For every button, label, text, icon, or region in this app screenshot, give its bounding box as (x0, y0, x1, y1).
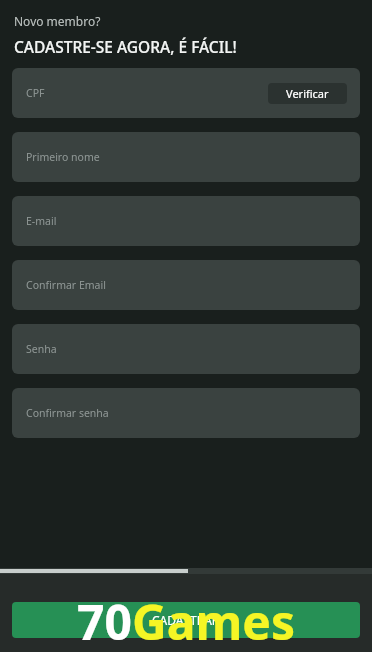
staticText: Confirmar senha (26, 406, 109, 420)
staticText: CPF (26, 86, 45, 100)
staticText: Senha (26, 342, 57, 356)
staticText: Primeiro nome (26, 150, 100, 164)
staticText: Confirmar Email (26, 278, 106, 292)
button[interactable]: CADASTRAR (12, 602, 360, 638)
staticText: 70 (77, 589, 132, 652)
button[interactable]: Confirmar Email (12, 260, 360, 310)
button[interactable]: Primeiro nome (12, 132, 360, 182)
staticText: CADASTRE-SE AGORA, É FÁCIL! (14, 36, 237, 57)
button[interactable]: Senha (12, 324, 360, 374)
staticText: Games (132, 589, 296, 652)
staticText: Novo membro? (14, 13, 101, 29)
button[interactable]: Verificar (268, 83, 347, 104)
button[interactable]: CPF (12, 68, 360, 118)
staticText: CADASTRAR (152, 612, 220, 628)
button[interactable]: E-mail (12, 196, 360, 246)
staticText: E-mail (26, 214, 57, 228)
staticText: Verificar (286, 86, 329, 101)
button[interactable]: Confirmar senha (12, 388, 360, 438)
